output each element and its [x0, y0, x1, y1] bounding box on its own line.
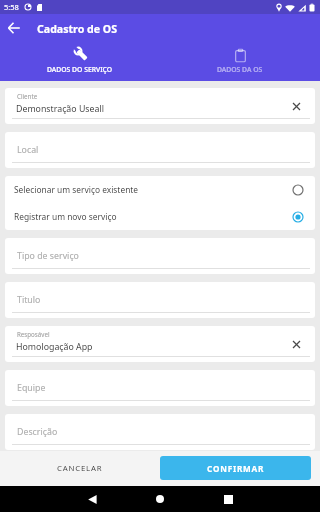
staticText: Local: [17, 144, 39, 156]
staticText: Registrar um novo serviço: [14, 211, 292, 222]
button[interactable]: Recents: [215, 486, 241, 512]
button[interactable]: Equipe: [5, 370, 315, 406]
staticText: 5:58: [4, 2, 19, 12]
staticText: Resposável: [17, 330, 50, 338]
button[interactable]: CANCELAR: [0, 451, 160, 486]
button[interactable]: Clear: [288, 336, 304, 352]
button[interactable]: Titulo: [5, 282, 315, 318]
button[interactable]: Home: [147, 486, 173, 512]
staticText: CONFIRMAR: [207, 463, 265, 474]
button[interactable]: Cliente: [5, 88, 315, 124]
button[interactable]: Resposável: [5, 326, 315, 362]
staticText: Titulo: [17, 294, 41, 306]
staticText: Selecionar um serviço existente: [14, 184, 292, 195]
staticText: DADOS DA OS: [217, 65, 263, 74]
staticText: Tipo de serviço: [17, 250, 79, 262]
staticText: Demonstração Useall: [16, 103, 104, 115]
staticText: Cliente: [17, 92, 38, 100]
button[interactable]: DADOS DA OS: [160, 47, 320, 81]
button[interactable]: Descrição: [5, 414, 315, 450]
staticText: Descrição: [17, 426, 58, 438]
button[interactable]: Tipo de serviço: [5, 238, 315, 274]
staticText: Equipe: [17, 382, 46, 394]
staticText: CANCELAR: [57, 463, 103, 474]
staticText: Cadastro de OS: [37, 22, 117, 36]
staticText: DADOS DO SERVIÇO: [47, 65, 113, 74]
button[interactable]: Local: [5, 132, 315, 168]
button[interactable]: Selecionar um serviço existente: [5, 176, 315, 203]
staticText: Homologação App: [16, 341, 93, 353]
button[interactable]: DADOS DO SERVIÇO: [0, 47, 160, 81]
button[interactable]: CONFIRMAR: [160, 456, 311, 480]
button[interactable]: Back: [79, 486, 105, 512]
button[interactable]: Clear: [288, 98, 304, 114]
button[interactable]: Registrar um novo serviço: [5, 203, 315, 230]
button[interactable]: Back: [0, 14, 27, 41]
